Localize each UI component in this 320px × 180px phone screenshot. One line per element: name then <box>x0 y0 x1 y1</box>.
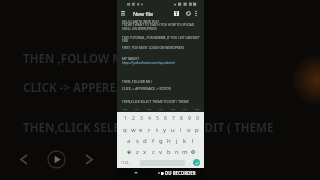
button[interactable]: g <box>157 135 165 146</box>
staticText: a <box>127 137 131 145</box>
staticText: d <box>143 137 147 145</box>
button[interactable]: i <box>177 124 185 135</box>
button[interactable]: t <box>153 124 161 135</box>
staticText: m <box>182 148 188 156</box>
button[interactable]: ?123 <box>119 157 130 168</box>
button[interactable]: o <box>185 124 193 135</box>
staticText: i <box>180 126 182 134</box>
button[interactable] <box>132 106 141 112</box>
staticText: b <box>167 148 171 156</box>
button[interactable]: . <box>187 157 193 168</box>
button[interactable]: p <box>193 124 201 135</box>
button[interactable] <box>156 106 165 112</box>
button[interactable]: 9 <box>185 113 193 124</box>
button[interactable] <box>180 106 189 112</box>
button[interactable]: w <box>129 124 137 135</box>
staticText: ?123 <box>121 160 129 165</box>
button[interactable]: , <box>127 157 133 168</box>
button[interactable]: Next <box>80 150 98 168</box>
staticText: 2 <box>132 115 135 122</box>
button[interactable]: Play <box>45 149 67 169</box>
button[interactable]: Shift <box>125 147 133 157</box>
staticText: MY TARGET <box>122 57 139 61</box>
button[interactable]: 1 <box>121 113 129 124</box>
staticText: l <box>192 137 194 145</box>
staticText: THEN,CLICK SELECT THEME TO EDIT ( THEME <box>122 100 189 104</box>
button[interactable]: q <box>121 124 129 135</box>
staticText: ON) <box>122 39 128 43</box>
staticText: z <box>136 148 139 156</box>
staticText: v <box>159 148 163 156</box>
button[interactable]: y <box>161 124 169 135</box>
staticText: CLICK -> APPEREANCE > EDITOR <box>23 80 203 96</box>
staticText: DU RECORDER <box>165 170 196 176</box>
staticText: 5 <box>156 115 159 122</box>
staticText: New file <box>133 10 154 17</box>
staticText: e <box>139 126 143 134</box>
button[interactable]: m <box>181 147 189 157</box>
button[interactable]: Save <box>171 8 181 18</box>
button[interactable]: s <box>133 135 141 146</box>
button[interactable]: k <box>181 135 189 146</box>
button[interactable]: 2 <box>129 113 137 124</box>
button[interactable]: h <box>165 135 173 146</box>
staticText: o <box>187 126 191 134</box>
button[interactable]: x <box>141 147 149 157</box>
staticText: h <box>167 137 171 145</box>
staticText: u <box>171 126 175 134</box>
staticText: FIRST, YOU MUST LOGIN ON WORDPRESS <box>122 46 185 50</box>
staticText: p <box>195 126 199 134</box>
button[interactable]: 4 <box>145 113 153 124</box>
button[interactable]: n <box>173 147 181 157</box>
staticText: THEN ,FOLLOW ME ) <box>23 51 137 67</box>
button[interactable]: Backspace <box>189 147 197 157</box>
staticText: 0 <box>196 115 199 122</box>
button[interactable]: Previous <box>14 150 32 168</box>
button[interactable]: Hide keyboard <box>131 169 141 177</box>
button[interactable]: a <box>125 135 133 146</box>
button[interactable]: f <box>149 135 157 146</box>
staticText: r <box>148 126 151 134</box>
button[interactable]: More options <box>192 8 200 18</box>
staticText: TODAY I WANT TO TEACH YOU HOW TO UPLOAD <box>122 23 195 27</box>
button[interactable]: j <box>173 135 181 146</box>
staticText: 7 <box>172 115 175 122</box>
staticText: 4 <box>148 115 151 122</box>
button[interactable]: Undo <box>183 8 193 18</box>
button[interactable] <box>192 106 201 112</box>
button[interactable]: d <box>141 135 149 146</box>
button[interactable]: 8 <box>177 113 185 124</box>
staticText: 1 <box>124 115 127 122</box>
button[interactable]: 3 <box>137 113 145 124</box>
button[interactable]: v <box>157 147 165 157</box>
button[interactable] <box>120 106 129 112</box>
staticText: , <box>129 160 131 166</box>
staticText: THEN ,FOLLOW ME ) <box>122 80 153 84</box>
button[interactable]: 5 <box>153 113 161 124</box>
button[interactable]: z <box>133 147 141 157</box>
staticText: c <box>152 148 155 156</box>
staticText: w <box>131 126 136 134</box>
button[interactable]: 6 <box>161 113 169 124</box>
button[interactable]: Navigation menu <box>118 8 127 18</box>
staticText: 9 <box>188 115 191 122</box>
button[interactable]: 0 <box>193 113 201 124</box>
staticText: x <box>143 148 147 156</box>
button[interactable]: b <box>165 147 173 157</box>
button[interactable]: Enter <box>193 159 200 166</box>
button[interactable] <box>168 106 177 112</box>
button[interactable]: u <box>169 124 177 135</box>
staticText: CLICK -> APPEREANCE -> EDITOR <box>122 87 171 91</box>
staticText: THIS TUTORIAL, FOR NEWBIE ,IF YOU LIST C… <box>122 36 200 40</box>
button[interactable]: r <box>145 124 153 135</box>
button[interactable]: e <box>137 124 145 135</box>
staticText: k <box>183 137 187 145</box>
button[interactable]: c <box>149 147 157 157</box>
staticText: https://jualsofmart.com/wp-admin/ <box>122 61 175 65</box>
button[interactable]: l <box>189 135 197 146</box>
button[interactable]: 7 <box>169 113 177 124</box>
button[interactable] <box>144 106 153 112</box>
staticText: 8 <box>180 115 183 122</box>
staticText: q <box>123 126 127 134</box>
